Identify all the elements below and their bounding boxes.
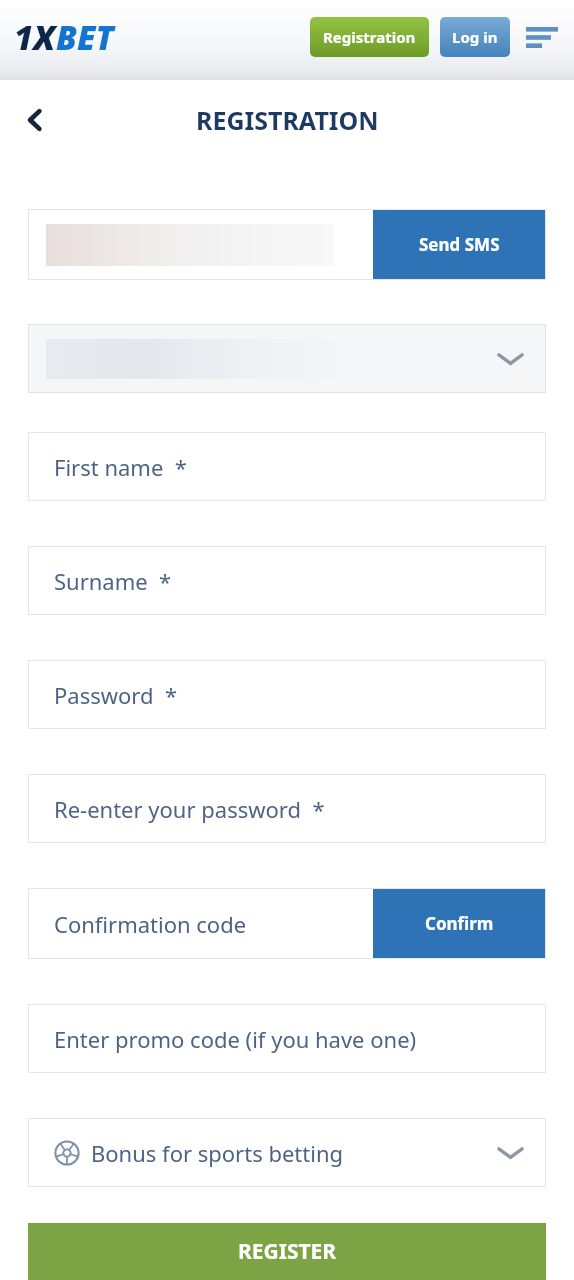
button[interactable]: Password * xyxy=(28,660,546,729)
staticText: REGISTER xyxy=(238,1237,337,1266)
staticText: Enter promo code (if you have one) xyxy=(54,1024,417,1054)
button[interactable]: Confirmation code xyxy=(54,909,247,939)
button[interactable]: First name * xyxy=(28,432,546,501)
staticText: Password * xyxy=(54,680,178,710)
staticText: Send SMS xyxy=(419,233,500,256)
button[interactable]: Back xyxy=(12,97,58,143)
staticText: Surname * xyxy=(54,566,172,596)
button[interactable] xyxy=(46,224,334,266)
staticText: Registration xyxy=(323,27,416,47)
staticText: First name * xyxy=(54,452,187,482)
staticText: Confirm xyxy=(425,912,494,935)
staticText: 1X xyxy=(14,15,56,60)
button[interactable]: REGISTER xyxy=(28,1223,546,1280)
button[interactable]: Log in xyxy=(440,17,510,57)
staticText: Confirmation code xyxy=(54,909,247,939)
staticText: Re-enter your password * xyxy=(54,794,325,824)
button[interactable]: Registration xyxy=(310,17,429,57)
staticText: Log in xyxy=(452,27,498,47)
button[interactable]: Enter promo code (if you have one) xyxy=(28,1004,546,1073)
staticText: BET xyxy=(56,15,114,60)
button[interactable]: Bonus for sports betting xyxy=(28,1118,546,1187)
button[interactable]: Menu xyxy=(520,15,564,59)
staticText: Bonus for sports betting xyxy=(91,1138,344,1168)
button[interactable]: Re-enter your password * xyxy=(28,774,546,843)
button[interactable]: Send SMS xyxy=(373,210,545,279)
button[interactable]: Surname * xyxy=(28,546,546,615)
button[interactable]: Confirm xyxy=(373,889,545,958)
button[interactable] xyxy=(28,324,546,393)
staticText: REGISTRATION xyxy=(196,103,379,137)
